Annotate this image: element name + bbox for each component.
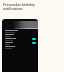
- button[interactable]: [2, 45, 38, 49]
- button[interactable]: [2, 37, 38, 41]
- button[interactable]: [2, 33, 38, 37]
- button[interactable]: [2, 29, 38, 33]
- staticText: Personalize birthday: [3, 3, 35, 7]
- button[interactable]: [2, 41, 38, 45]
- staticText: notifications: [3, 7, 23, 11]
